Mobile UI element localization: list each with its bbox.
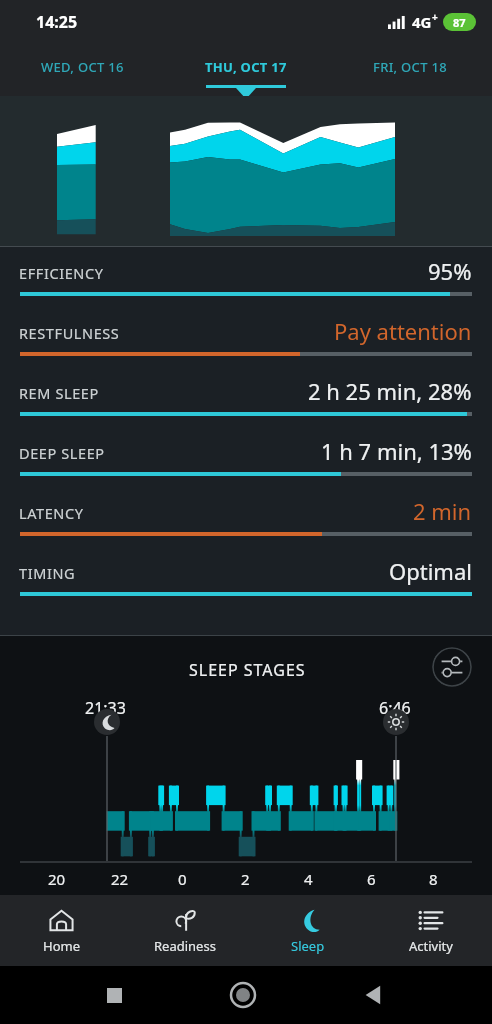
staticText: TIMING xyxy=(19,563,76,583)
button[interactable]: TIMING xyxy=(0,547,492,607)
button[interactable]: Readiness xyxy=(123,895,246,966)
button[interactable]: DEEP SLEEP xyxy=(0,427,492,487)
button[interactable]: THU, OCT 17 xyxy=(164,44,328,96)
staticText: FRI, OCT 18 xyxy=(373,58,447,76)
staticText: 2 xyxy=(241,869,250,889)
button[interactable]: LATENCY xyxy=(0,487,492,547)
button[interactable]: FRI, OCT 18 xyxy=(328,44,492,96)
button[interactable]: Home xyxy=(0,895,123,966)
staticText: 21:33 xyxy=(85,697,126,719)
staticText: EFFICIENCY xyxy=(19,263,104,283)
staticText: 6:46 xyxy=(379,697,411,719)
staticText: 2 h 25 min, 28% xyxy=(308,376,472,406)
button[interactable]: REM SLEEP xyxy=(0,367,492,427)
button[interactable]: EFFICIENCY xyxy=(0,247,492,307)
staticText: 22 xyxy=(111,869,129,889)
staticText: 4 xyxy=(304,869,313,889)
button[interactable]: Chart settings xyxy=(432,647,472,687)
button[interactable]: WED, OCT 16 xyxy=(0,44,164,96)
staticText: RESTFULNESS xyxy=(19,323,120,343)
staticText: 20 xyxy=(48,869,66,889)
staticText: Pay attention xyxy=(334,316,472,346)
staticText: 4G xyxy=(412,12,432,32)
staticText: DEEP SLEEP xyxy=(19,443,105,463)
staticText: REM SLEEP xyxy=(19,383,99,403)
staticText: THU, OCT 17 xyxy=(205,58,287,76)
staticText: 1 h 7 min, 13% xyxy=(321,436,472,466)
staticText: Home xyxy=(43,937,80,955)
button[interactable]: Activity xyxy=(369,895,492,966)
staticText: SLEEP STAGES xyxy=(189,659,306,681)
staticText: 87 xyxy=(453,15,466,30)
staticText: Sleep xyxy=(291,937,325,955)
staticText: 0 xyxy=(178,869,187,889)
staticText: LATENCY xyxy=(19,503,84,523)
staticText: 6 xyxy=(367,869,376,889)
staticText: Optimal xyxy=(389,556,472,586)
staticText: Activity xyxy=(409,937,453,955)
button[interactable]: RESTFULNESS xyxy=(0,307,492,367)
staticText: 2 min xyxy=(413,496,472,526)
staticText: Readiness xyxy=(154,937,216,955)
button[interactable]: Back xyxy=(363,984,385,1006)
button[interactable]: Home xyxy=(230,982,256,1008)
staticText: WED, OCT 16 xyxy=(41,58,124,76)
staticText: + xyxy=(432,10,438,24)
staticText: 95% xyxy=(428,256,472,286)
button[interactable]: Sleep xyxy=(246,895,369,966)
staticText: 14:25 xyxy=(36,11,78,33)
staticText: 8 xyxy=(429,869,438,889)
